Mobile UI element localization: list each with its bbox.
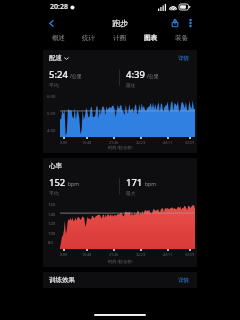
staticText: 计圈 <box>113 34 126 42</box>
staticText: 0:00 <box>60 252 68 257</box>
button[interactable]: 统计 <box>73 31 104 45</box>
staticText: 最大 <box>126 190 136 196</box>
staticText: 心率 <box>49 162 62 170</box>
button[interactable]: 计圈 <box>104 31 135 45</box>
staticText: 详情 <box>178 277 189 284</box>
staticText: 43:11 <box>163 140 173 145</box>
staticText: 5:24 <box>49 68 68 81</box>
button[interactable]: 配速 <box>43 50 197 153</box>
staticText: 21:36 <box>109 252 119 257</box>
staticText: 概述 <box>52 34 65 42</box>
button[interactable]: More options <box>183 16 197 30</box>
staticText: 统计 <box>82 34 95 42</box>
staticText: 装备 <box>175 34 188 42</box>
staticText: 4:00 <box>47 128 56 134</box>
staticText: 训练效果 <box>49 276 75 284</box>
button[interactable]: 装备 <box>166 31 197 45</box>
button[interactable]: 训练效果 <box>43 272 197 288</box>
staticText: 时间 (秒全表) <box>108 145 133 151</box>
staticText: 32:23 <box>136 252 146 257</box>
staticText: 6:00 <box>47 94 56 100</box>
staticText: 152 <box>49 176 66 189</box>
staticText: 53:59 <box>185 252 195 257</box>
staticText: 平均 <box>49 190 59 196</box>
staticText: 80 <box>48 240 53 246</box>
staticText: 171 <box>126 176 143 189</box>
staticText: bpm <box>145 181 156 188</box>
staticText: 详情 <box>178 55 189 62</box>
staticText: 平均 <box>49 82 59 88</box>
staticText: 100 <box>48 231 56 237</box>
button[interactable]: Back <box>43 15 59 31</box>
staticText: 4:39 <box>126 68 145 81</box>
staticText: 140 <box>48 212 56 218</box>
staticText: bpm <box>68 181 79 188</box>
staticText: 32:23 <box>136 140 146 145</box>
staticText: 0:00 <box>60 140 68 145</box>
staticText: 43:11 <box>163 252 173 257</box>
button[interactable]: Share <box>167 15 182 30</box>
button[interactable]: 详情 <box>176 53 191 64</box>
staticText: 配速 <box>49 54 62 62</box>
button[interactable]: 概述 <box>43 31 73 45</box>
staticText: 20:28 <box>50 2 68 12</box>
staticText: 5:00 <box>47 111 56 117</box>
staticText: 图表 <box>144 34 157 42</box>
staticText: 21:36 <box>109 140 119 145</box>
staticText: 10:48 <box>82 140 92 145</box>
staticText: 160 <box>48 202 56 208</box>
button[interactable]: 详情 <box>176 275 191 286</box>
button[interactable]: 图表 <box>135 31 166 45</box>
staticText: 120 <box>48 221 56 227</box>
staticText: 10:48 <box>82 252 92 257</box>
staticText: 时间 (秒全表) <box>108 259 133 265</box>
staticText: 53:59 <box>185 140 195 145</box>
button[interactable]: 心率 <box>43 158 197 267</box>
staticText: 跑步 <box>112 18 128 28</box>
staticText: /公里 <box>147 73 159 80</box>
staticText: /公里 <box>70 73 82 80</box>
staticText: 最佳 <box>126 82 136 88</box>
